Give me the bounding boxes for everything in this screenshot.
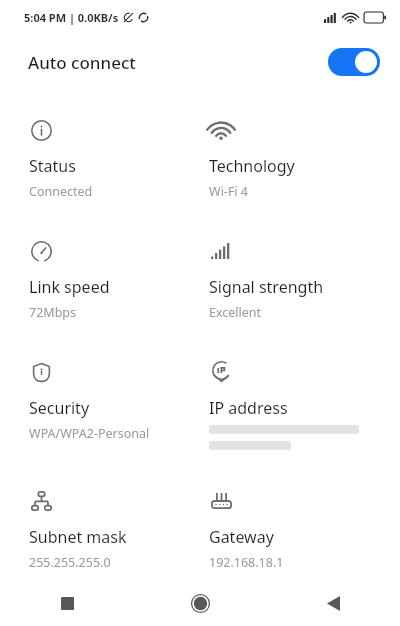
staticText: 255.255.255.0 <box>29 554 111 571</box>
staticText: Link speed <box>29 276 110 298</box>
staticText: Signal strength <box>209 276 324 298</box>
staticText: Excellent <box>209 304 262 321</box>
staticText: 192.168.18.1 <box>209 554 284 571</box>
button[interactable]: Subnet mask <box>29 489 200 571</box>
button[interactable]: IP address <box>209 360 400 450</box>
button[interactable]: Security <box>29 360 200 442</box>
staticText: Wi-Fi 4 <box>209 183 248 200</box>
button[interactable]: Auto connect toggle <box>328 48 380 76</box>
button[interactable]: Auto connect <box>0 34 400 90</box>
button[interactable]: Recents <box>0 580 134 626</box>
staticText: Status <box>29 155 76 177</box>
button[interactable]: Home <box>134 580 267 626</box>
staticText: Auto connect <box>28 51 136 74</box>
staticText: Security <box>29 397 90 419</box>
staticText: IP address <box>209 397 288 419</box>
staticText: Connected <box>29 183 93 200</box>
staticText: Technology <box>209 155 295 177</box>
button[interactable]: Technology <box>209 118 400 200</box>
staticText: 5:04 PM | 0.0KB/s <box>24 10 119 25</box>
staticText: WPA/WPA2-Personal <box>29 425 150 442</box>
button[interactable]: Back <box>267 580 400 626</box>
button[interactable]: Status <box>29 118 200 200</box>
button[interactable]: Gateway <box>209 489 400 571</box>
staticText: 72Mbps <box>29 304 77 321</box>
button[interactable]: Signal strength <box>209 239 400 321</box>
staticText: Gateway <box>209 526 274 548</box>
staticText: Subnet mask <box>29 526 127 548</box>
button[interactable]: Link speed <box>29 239 200 321</box>
